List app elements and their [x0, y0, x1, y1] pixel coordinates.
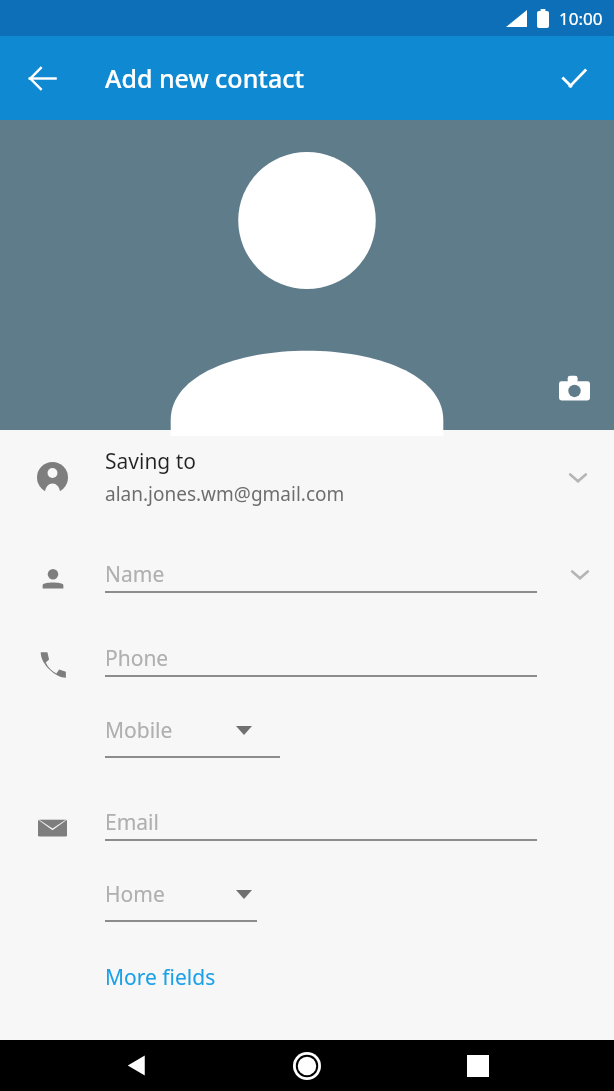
staticText: Phone — [105, 644, 169, 673]
button[interactable]: Recent apps — [452, 1040, 504, 1091]
staticText: More fields — [105, 963, 216, 992]
button[interactable]: Home — [105, 867, 257, 929]
staticText: Name — [105, 560, 165, 589]
button[interactable]: Saving to — [0, 434, 614, 520]
staticText: Email — [105, 808, 159, 837]
button[interactable]: Name — [0, 538, 614, 622]
button[interactable]: Back — [110, 1040, 162, 1091]
staticText: Home — [105, 880, 165, 909]
button[interactable]: Email — [0, 786, 614, 870]
button[interactable]: Phone — [0, 622, 614, 706]
button[interactable]: Home — [281, 1040, 333, 1091]
button[interactable]: More fields — [105, 963, 216, 992]
button[interactable]: Back — [12, 48, 72, 108]
staticText: Add new contact — [105, 61, 305, 95]
staticText: 10:00 — [559, 7, 603, 30]
staticText: alan.jones.wm@gmail.com — [105, 481, 345, 507]
staticText: Mobile — [105, 716, 173, 745]
button[interactable]: Contact photo — [0, 120, 614, 430]
staticText: Saving to — [105, 447, 197, 476]
button[interactable]: Save contact — [544, 48, 604, 108]
button[interactable]: Mobile — [105, 703, 280, 765]
button[interactable]: Take photo — [552, 366, 596, 410]
